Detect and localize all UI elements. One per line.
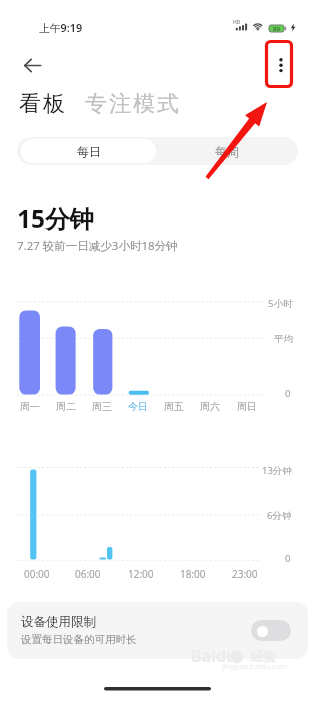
staticText: 周日 <box>237 400 257 412</box>
staticText: jingyan.baidu.com <box>222 661 287 671</box>
staticText: 周三 <box>92 400 112 412</box>
staticText: 13分钟 <box>262 464 292 476</box>
staticText: 23:00 <box>232 567 258 579</box>
staticText: 12:00 <box>128 567 154 579</box>
staticText: 设置每日设备的可用时长 <box>21 633 137 646</box>
staticText: HD <box>233 19 241 25</box>
staticText: 周一 <box>20 400 40 412</box>
button[interactable] <box>7 602 308 659</box>
button[interactable] <box>14 52 50 80</box>
staticText: 18:00 <box>180 567 206 579</box>
staticText: 上午9:19 <box>39 20 83 34</box>
staticText: 89 <box>273 25 280 33</box>
staticText: 15分钟 <box>17 202 95 235</box>
staticText: 平均 <box>274 333 293 345</box>
staticText: 设备使用限制 <box>21 614 96 630</box>
button[interactable] <box>268 48 294 78</box>
staticText: 00:00 <box>24 567 50 579</box>
staticText: 0 <box>285 387 291 399</box>
staticText: 6分钟 <box>267 509 292 521</box>
staticText: 今日 <box>128 400 148 412</box>
button[interactable]: 每日 <box>21 139 156 163</box>
staticText: 专注模式 <box>84 90 180 118</box>
staticText: 0 <box>285 552 291 564</box>
staticText: 7.27 较前一日减少3小时18分钟 <box>17 238 178 253</box>
button[interactable] <box>251 620 291 641</box>
staticText: 06:00 <box>75 567 101 579</box>
staticText: 周五 <box>164 400 184 412</box>
staticText: 5小时 <box>268 297 293 309</box>
staticText: 周六 <box>200 400 220 412</box>
button[interactable]: 每周 <box>156 139 298 163</box>
staticText: 看板 <box>18 90 66 118</box>
staticText: 经验 <box>250 648 276 664</box>
staticText: 每日 <box>77 144 101 159</box>
staticText: 周二 <box>56 400 76 412</box>
staticText: 每周 <box>215 144 239 159</box>
staticText: Baidu <box>191 645 237 667</box>
